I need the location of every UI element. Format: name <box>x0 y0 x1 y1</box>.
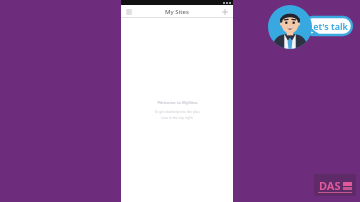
staticText: To get started press the plus <box>154 109 200 114</box>
button[interactable]: Let's talk - open chat <box>266 2 358 52</box>
staticText: Welcome to MySites <box>157 100 198 106</box>
staticText: My Sites <box>165 8 189 16</box>
button[interactable]: Menu <box>124 7 134 17</box>
staticText: icon in the top right <box>161 115 193 120</box>
button[interactable]: DAS logo <box>314 174 356 196</box>
button[interactable]: Add site <box>220 7 230 17</box>
staticText: Let's talk <box>308 20 348 32</box>
staticText: DAS <box>319 178 341 193</box>
